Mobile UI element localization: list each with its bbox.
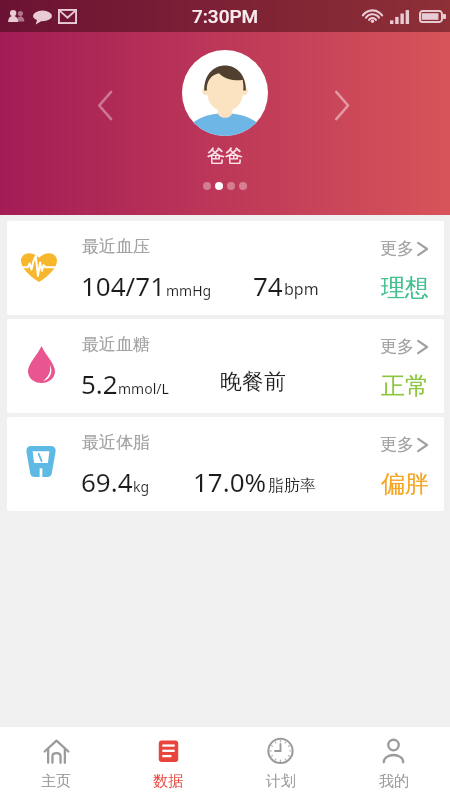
staticText: 主页 xyxy=(41,772,71,791)
button[interactable]: Next profile xyxy=(334,90,350,121)
staticText: 104/71 xyxy=(81,268,166,303)
staticText: 74 xyxy=(253,268,283,303)
staticText: 更多 xyxy=(380,238,414,259)
staticText: 5.2 xyxy=(81,366,118,401)
button[interactable]: Plan xyxy=(224,727,337,800)
staticText: 数据 xyxy=(153,772,183,791)
staticText: 计划 xyxy=(266,772,296,791)
staticText: 更多 xyxy=(380,434,414,455)
staticText: 7:30PM xyxy=(192,5,259,27)
staticText: 最近血压 xyxy=(82,236,150,257)
staticText: 正常 xyxy=(381,371,429,401)
button[interactable]: Profile xyxy=(337,727,450,800)
staticText: 69.4 xyxy=(81,464,133,499)
staticText: 最近体脂 xyxy=(82,432,150,453)
button[interactable]: 更多 xyxy=(7,221,444,315)
button[interactable]: Home xyxy=(0,727,112,800)
button[interactable]: Profile avatar xyxy=(182,50,268,136)
staticText: 爸爸 xyxy=(207,145,243,168)
staticText: 脂肪率 xyxy=(268,476,316,496)
staticText: 17.0% xyxy=(193,464,267,499)
staticText: 偏胖 xyxy=(381,469,429,499)
button[interactable]: Previous profile xyxy=(97,90,113,121)
button[interactable]: Data xyxy=(112,727,224,800)
staticText: kg xyxy=(133,477,150,496)
staticText: bpm xyxy=(284,278,319,300)
button[interactable]: 更多 xyxy=(7,417,444,511)
button[interactable]: 更多 xyxy=(7,319,444,413)
staticText: 更多 xyxy=(380,336,414,357)
staticText: mmol/L xyxy=(118,379,169,398)
staticText: 晚餐前 xyxy=(220,368,286,396)
staticText: 我的 xyxy=(379,772,409,791)
staticText: mmHg xyxy=(166,281,212,300)
staticText: 理想 xyxy=(381,273,429,303)
staticText: 最近血糖 xyxy=(82,334,150,355)
